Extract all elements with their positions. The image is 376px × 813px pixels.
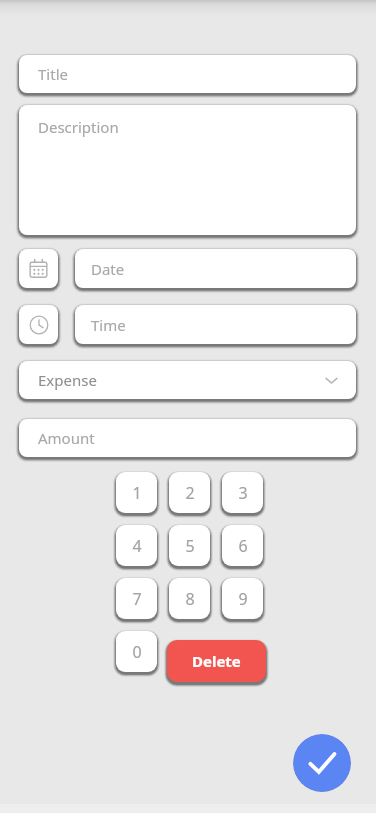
staticText: 2 xyxy=(185,482,195,504)
staticText: Expense xyxy=(38,370,324,390)
staticText: Title xyxy=(38,64,68,84)
staticText: 7 xyxy=(132,588,142,610)
button[interactable]: 8 xyxy=(169,578,210,619)
staticText: 5 xyxy=(185,535,195,557)
button[interactable]: 4 xyxy=(116,525,157,566)
staticText: Date xyxy=(91,259,125,279)
button[interactable]: Delete xyxy=(167,640,266,682)
button[interactable]: 3 xyxy=(222,472,263,513)
staticText: 4 xyxy=(132,535,142,557)
button[interactable]: 5 xyxy=(169,525,210,566)
staticText: 0 xyxy=(132,641,142,663)
staticText: 9 xyxy=(238,588,248,610)
staticText: 8 xyxy=(185,588,195,610)
staticText: 3 xyxy=(238,482,248,504)
button[interactable]: Amount xyxy=(19,419,356,457)
button[interactable]: 0 xyxy=(116,631,157,672)
staticText: Amount xyxy=(38,428,95,448)
button[interactable]: Expense xyxy=(19,361,356,399)
button[interactable]: Title xyxy=(19,55,356,93)
button[interactable]: Description xyxy=(19,105,356,235)
button[interactable]: 9 xyxy=(222,578,263,619)
button[interactable]: Time xyxy=(75,305,356,344)
button[interactable]: 6 xyxy=(222,525,263,566)
button[interactable]: 1 xyxy=(116,472,157,513)
button[interactable]: Pick date xyxy=(19,249,58,288)
staticText: Delete xyxy=(192,651,241,671)
button[interactable]: Date xyxy=(75,249,356,288)
button[interactable]: 7 xyxy=(116,578,157,619)
staticText: 1 xyxy=(132,482,142,504)
staticText: 6 xyxy=(238,535,248,557)
button[interactable]: 2 xyxy=(169,472,210,513)
button[interactable]: Pick time xyxy=(19,305,58,344)
staticText: Description xyxy=(38,117,119,137)
button[interactable]: Save xyxy=(293,734,351,792)
staticText: Time xyxy=(91,315,126,335)
